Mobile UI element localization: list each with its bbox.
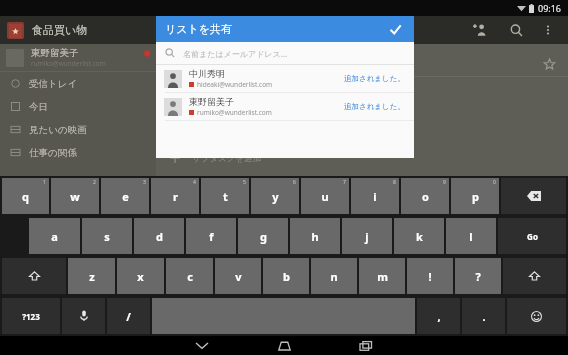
button[interactable]: ! (407, 258, 453, 294)
button[interactable]: Home (256, 336, 312, 355)
staticText: n (330, 269, 338, 284)
button[interactable]: ? (455, 258, 501, 294)
button[interactable]: z (68, 258, 115, 294)
button[interactable]: 中川秀明 (156, 65, 414, 92)
button[interactable]: n (311, 258, 357, 294)
staticText: q (22, 189, 29, 204)
staticText: t (223, 189, 228, 204)
button[interactable]: Search (504, 18, 528, 42)
button[interactable]: i (351, 178, 399, 214)
staticText: r (173, 189, 178, 204)
button[interactable]: b (263, 258, 309, 294)
button[interactable]: Shift (2, 258, 66, 294)
button[interactable]: リマインダーを設定 (156, 119, 568, 145)
button[interactable]: Back (174, 336, 230, 355)
staticText: w (70, 189, 80, 204)
button[interactable]: q (2, 178, 49, 214)
button[interactable]: v (215, 258, 261, 294)
button[interactable]: 仕事の関係 (0, 141, 156, 164)
staticText: i (373, 189, 377, 204)
button[interactable]: s (82, 218, 132, 254)
button[interactable]: a (29, 218, 80, 254)
button[interactable]: t (201, 178, 249, 214)
button[interactable]: g (238, 218, 288, 254)
button[interactable]: r (151, 178, 199, 214)
staticText: 5 (243, 179, 246, 186)
staticText: m (377, 269, 388, 284)
button[interactable]: 受信トレイ (0, 72, 156, 95)
staticText: 仕事の関係 (29, 147, 77, 159)
staticText: rumiko@wunderlist.com (197, 108, 272, 117)
button[interactable]: x (117, 258, 164, 294)
button[interactable]: j (342, 218, 392, 254)
staticText: 追加されました。 (344, 102, 405, 111)
button[interactable]: u (301, 178, 349, 214)
button[interactable]: k (394, 218, 444, 254)
button[interactable]: Add person (468, 18, 492, 42)
staticText: o (422, 189, 429, 204)
staticText: l (469, 229, 473, 244)
staticText: 2 (93, 179, 96, 186)
staticText: e (122, 189, 129, 204)
staticText: 09:16 (538, 2, 562, 14)
button[interactable]: Go (498, 218, 566, 254)
staticText: リストを共有 (165, 22, 233, 36)
button[interactable]: c (166, 258, 213, 294)
button[interactable]: w (51, 178, 99, 214)
button[interactable]: e (101, 178, 149, 214)
staticText: b (283, 269, 290, 284)
button[interactable]: , (417, 298, 460, 334)
button[interactable]: y (251, 178, 299, 214)
button[interactable]: f (186, 218, 236, 254)
button[interactable]: Voice input (62, 298, 105, 334)
button[interactable]: . (462, 298, 505, 334)
button[interactable]: d (134, 218, 184, 254)
button[interactable]: Done (384, 18, 406, 40)
button[interactable]: Star (538, 53, 560, 75)
staticText: 今日 (29, 101, 48, 113)
button[interactable]: p (451, 178, 499, 214)
button[interactable]: 東野留美子 (156, 93, 414, 120)
staticText: 追加されました。 (344, 74, 405, 83)
staticText: 東野留美子 (31, 47, 79, 59)
staticText: p (472, 189, 479, 204)
button[interactable] (7, 22, 24, 39)
staticText: ! (428, 269, 432, 284)
button[interactable]: 見たいの映画 (0, 118, 156, 141)
staticText: k (416, 229, 423, 244)
staticText: 見たいの映画 (29, 124, 87, 136)
staticText: Go (527, 231, 538, 242)
staticText: y (272, 189, 279, 204)
button[interactable]: 繰り返しなし (156, 93, 568, 119)
staticText: d (156, 229, 163, 244)
staticText: 6 (293, 179, 296, 186)
button[interactable]: Shift (503, 258, 566, 294)
button[interactable]: コーヒー (156, 52, 568, 76)
button[interactable]: o (401, 178, 449, 214)
staticText: j (365, 229, 369, 244)
staticText: 食品買い物 (32, 23, 88, 37)
button[interactable]: 今日 (0, 95, 156, 118)
staticText: 中川秀明 (189, 68, 225, 79)
button[interactable]: / (107, 298, 150, 334)
staticText: サブタスクを追加 (192, 153, 262, 164)
staticText: 名前またはメールアドレス... (183, 48, 288, 59)
button[interactable]: ?123 (2, 298, 60, 334)
button[interactable]: Emoji (507, 298, 566, 334)
button[interactable]: サブタスクを追加 (156, 145, 568, 171)
button[interactable]: l (446, 218, 496, 254)
button[interactable]: Recents (338, 336, 394, 355)
button[interactable]: 名前またはメールアドレス... (156, 42, 414, 64)
button[interactable]: More options (538, 20, 558, 40)
button[interactable]: h (290, 218, 340, 254)
button[interactable]: m (359, 258, 405, 294)
staticText: 今日 (220, 81, 235, 90)
button[interactable]: Backspace (501, 178, 566, 214)
button[interactable]: 東野留美子 (0, 44, 156, 71)
staticText: ? (475, 269, 481, 284)
staticText: 9 (443, 179, 446, 186)
staticText: 4 (193, 179, 196, 186)
staticText: 東野留美子 (189, 96, 234, 107)
